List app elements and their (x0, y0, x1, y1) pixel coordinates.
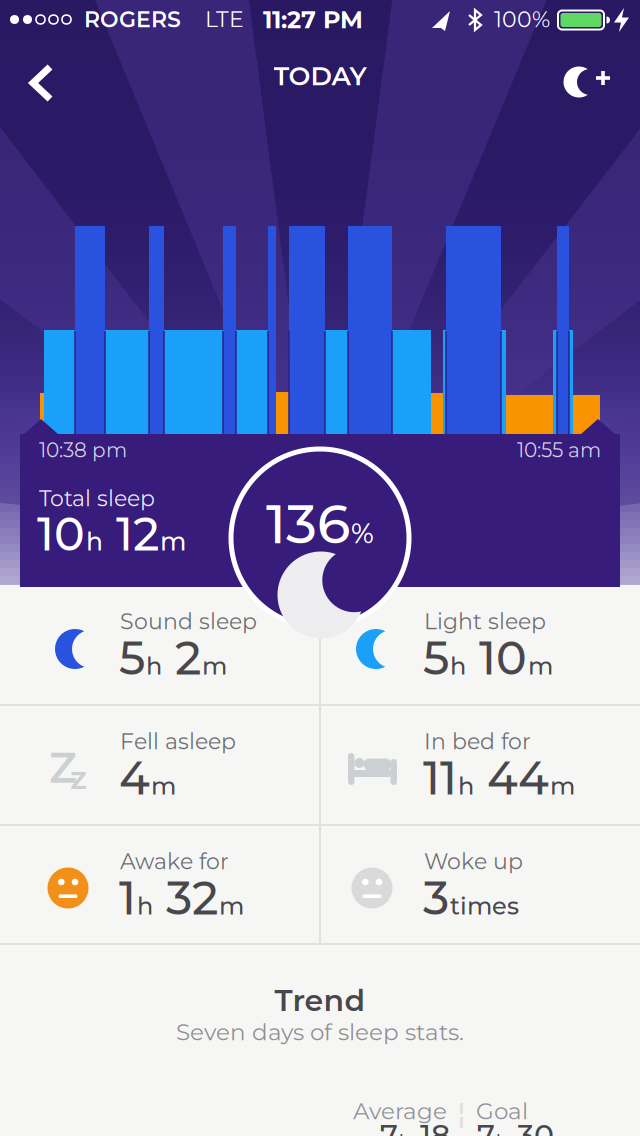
staticText: m (550, 771, 575, 801)
staticText: h (496, 1130, 508, 1136)
staticText: Seven days of sleep stats. (176, 1018, 464, 1046)
staticText: Sound sleep (120, 608, 257, 635)
staticText: 44 (475, 750, 549, 806)
staticText: LTE (205, 6, 244, 33)
staticText: 12 (104, 506, 159, 562)
staticText: 5 (119, 630, 145, 686)
staticText: h (399, 1130, 411, 1136)
staticText: 5 (423, 630, 449, 686)
staticText: 18 (412, 1117, 450, 1136)
staticText: ROGERS (84, 6, 181, 33)
staticText: 32 (154, 870, 218, 926)
staticText: Z (49, 742, 77, 793)
staticText: 100% (494, 6, 550, 33)
staticText: 3 (423, 870, 449, 926)
staticText: 136 (266, 491, 350, 557)
staticText: Total sleep (39, 485, 155, 512)
staticText: 7 (477, 1117, 495, 1136)
button[interactable]: Back (20, 55, 80, 111)
staticText: 11:27 PM (263, 5, 363, 34)
staticText: h (146, 651, 162, 681)
staticText: m (160, 526, 186, 557)
staticText: Light sleep (424, 608, 546, 635)
staticText: 10:38 pm (39, 438, 127, 462)
staticText: Average (353, 1097, 447, 1125)
staticText: 30 (509, 1117, 554, 1136)
staticText: h (450, 651, 466, 681)
staticText: m (528, 651, 553, 681)
staticText: Woke up (424, 848, 523, 875)
staticText: In bed for (424, 728, 531, 755)
staticText: Trend (274, 982, 365, 1019)
button[interactable]: Add sleep (550, 55, 625, 109)
staticText: 10 (37, 506, 85, 562)
staticText: Fell asleep (120, 728, 236, 755)
staticText: 11 (423, 750, 457, 806)
staticText: 2 (163, 630, 201, 686)
staticText: m (219, 891, 244, 921)
staticText: z (70, 758, 87, 797)
staticText: times (450, 891, 519, 921)
staticText: 4 (119, 750, 150, 806)
staticText: h (86, 526, 103, 557)
staticText: Goal (476, 1097, 528, 1125)
staticText: m (202, 651, 227, 681)
staticText: h (458, 771, 474, 801)
staticText: 10 (467, 630, 527, 686)
staticText: % (351, 517, 374, 550)
staticText: h (137, 891, 153, 921)
staticText: 7 (380, 1117, 398, 1136)
staticText: 1 (119, 870, 136, 926)
staticText: TODAY (273, 60, 366, 92)
staticText: Awake for (120, 848, 229, 875)
staticText: m (151, 771, 176, 801)
staticText: 10:55 am (517, 438, 601, 462)
